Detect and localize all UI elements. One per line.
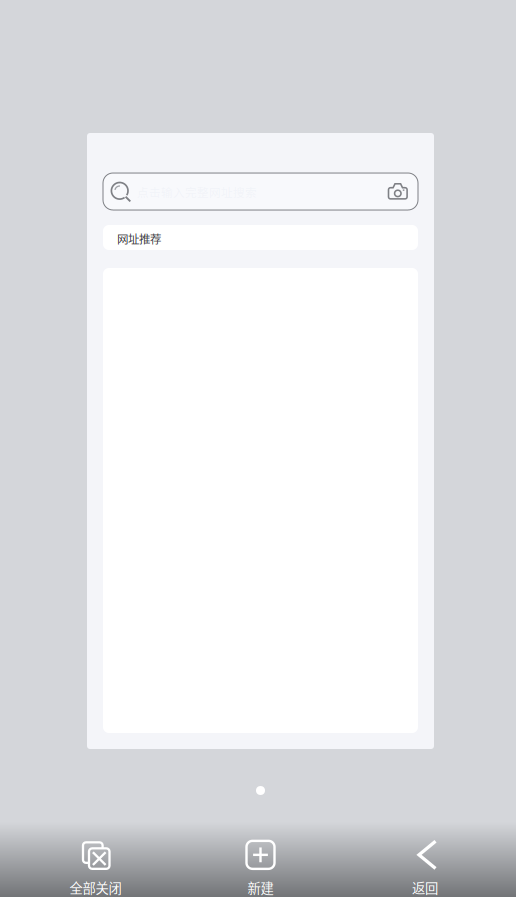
staticText: 返回 (412, 878, 438, 897)
staticText: 全部关闭 (69, 878, 121, 897)
staticText: 新建 (247, 878, 273, 897)
button[interactable]: Visual search (383, 176, 413, 206)
button[interactable]: 网址推荐 (103, 225, 418, 250)
button[interactable]: 新建 (191, 822, 330, 897)
staticText: 网址推荐 (117, 230, 161, 247)
button[interactable]: 全部关闭 (0, 822, 191, 897)
button[interactable]: 点击输入完整网址搜索 (103, 173, 418, 210)
button[interactable]: 返回 (330, 822, 516, 897)
